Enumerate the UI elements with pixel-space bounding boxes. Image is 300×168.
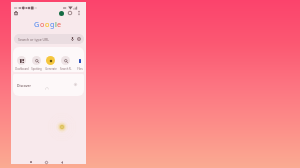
- staticText: l: [55, 19, 57, 29]
- button[interactable]: Files: [72, 56, 84, 71]
- button[interactable]: Spotting: [29, 56, 44, 71]
- staticText: Search or type URL: [18, 37, 50, 42]
- staticText: Dashboard: [15, 67, 29, 71]
- button[interactable]: Home: [12, 9, 20, 17]
- staticText: Discover: [17, 83, 31, 88]
- button[interactable]: Search R..: [58, 56, 73, 71]
- staticText: Files: [77, 67, 83, 71]
- staticText: Search R..: [60, 67, 72, 71]
- button[interactable]: Account: [57, 9, 65, 17]
- button[interactable]: Dashboard: [14, 56, 29, 71]
- staticText: e: [57, 19, 61, 29]
- staticText: Generate: [45, 67, 57, 71]
- staticText: G: [34, 19, 40, 29]
- button[interactable]: Back: [57, 157, 67, 167]
- button[interactable]: Recents: [26, 157, 36, 167]
- button[interactable]: Generate: [43, 56, 58, 71]
- staticText: o: [40, 19, 45, 29]
- button[interactable]: Discover: [13, 74, 84, 96]
- button[interactable]: More options: [75, 9, 83, 17]
- button[interactable]: Home: [41, 157, 51, 167]
- staticText: Spotting: [31, 67, 42, 71]
- staticText: o: [45, 19, 50, 29]
- staticText: g: [50, 19, 55, 29]
- button[interactable]: Tabs: [66, 9, 74, 17]
- button[interactable]: Search or type URL: [14, 34, 84, 44]
